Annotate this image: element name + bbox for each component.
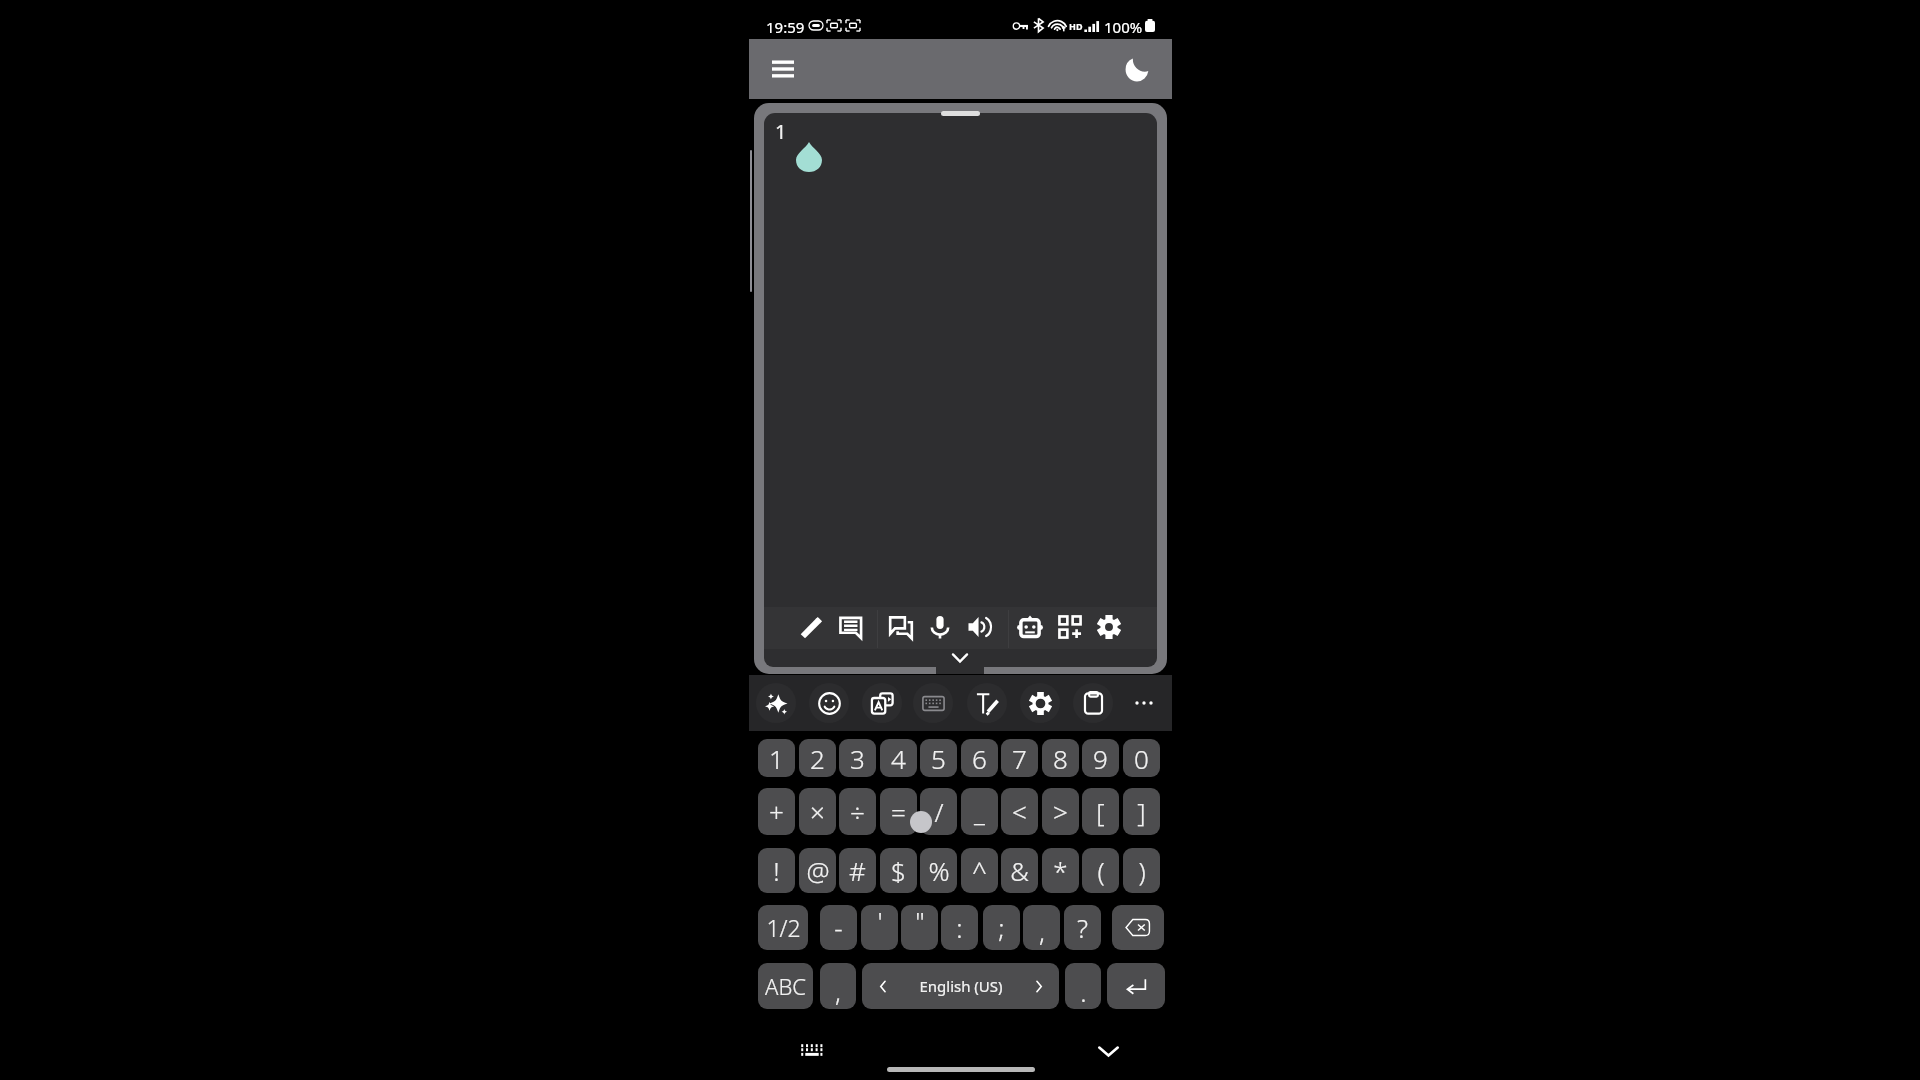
button[interactable]: Draw bbox=[796, 611, 828, 643]
button[interactable]: Translate bbox=[862, 683, 902, 723]
button[interactable]: Dark mode bbox=[1121, 51, 1157, 87]
button[interactable]: Backspace bbox=[1112, 905, 1164, 950]
staticText: _ bbox=[974, 794, 985, 829]
button[interactable]: Suggestions bbox=[756, 683, 796, 723]
button[interactable]: ) bbox=[1123, 848, 1160, 893]
button[interactable]: ^ bbox=[961, 848, 998, 893]
staticText: ! bbox=[773, 853, 780, 888]
button[interactable]: > bbox=[1042, 788, 1079, 835]
button[interactable]: _ bbox=[961, 788, 998, 835]
staticText: 1/2 bbox=[766, 912, 801, 943]
button[interactable]: Handwriting bbox=[967, 683, 1007, 723]
staticText: 5 bbox=[931, 741, 946, 776]
button[interactable]: Settings bbox=[1093, 611, 1125, 643]
staticText: 7 bbox=[1012, 741, 1027, 776]
button[interactable]: ' bbox=[861, 905, 898, 950]
button[interactable]: , bbox=[820, 963, 856, 1009]
button[interactable]: / bbox=[920, 788, 957, 835]
button[interactable]: ÷ bbox=[839, 788, 876, 835]
button[interactable]: 4 bbox=[880, 739, 917, 777]
button[interactable]: " bbox=[901, 905, 938, 950]
button[interactable]: 7 bbox=[1001, 739, 1038, 777]
button[interactable]: ? bbox=[1064, 905, 1101, 950]
button[interactable]: 9 bbox=[1082, 739, 1119, 777]
button[interactable]: ( bbox=[1082, 848, 1119, 893]
button[interactable]: 0 bbox=[1123, 739, 1160, 777]
staticText: % bbox=[928, 853, 950, 888]
button[interactable]: % bbox=[920, 848, 957, 893]
staticText: ; bbox=[998, 910, 1005, 945]
button[interactable]: ] bbox=[1123, 788, 1160, 835]
button[interactable]: Keyboard modes bbox=[913, 683, 953, 723]
button[interactable]: ABC bbox=[758, 963, 813, 1009]
button[interactable]: ; bbox=[983, 905, 1020, 950]
button[interactable]: = bbox=[880, 788, 917, 835]
button[interactable]: Clipboard bbox=[1073, 683, 1113, 723]
button[interactable]: ! bbox=[758, 848, 795, 893]
button[interactable]: # bbox=[839, 848, 876, 893]
button[interactable]: Menu bbox=[765, 51, 801, 87]
staticText: ) bbox=[1138, 853, 1146, 888]
button[interactable]: More options bbox=[1124, 683, 1164, 723]
button[interactable]: Notes bbox=[835, 611, 867, 643]
button[interactable]: 3 bbox=[839, 739, 876, 777]
button[interactable]: 8 bbox=[1042, 739, 1079, 777]
button[interactable]: Enter bbox=[1107, 963, 1165, 1009]
button[interactable]: Voice input bbox=[924, 611, 956, 643]
staticText: 1 bbox=[775, 118, 787, 145]
staticText: - bbox=[834, 910, 843, 945]
button[interactable]: 1/2 bbox=[758, 905, 808, 950]
button[interactable]: [ bbox=[1082, 788, 1119, 835]
button[interactable]: * bbox=[1042, 848, 1079, 893]
staticText: 100% bbox=[1104, 17, 1143, 37]
button[interactable]: : bbox=[941, 905, 978, 950]
staticText: 9 bbox=[1093, 741, 1108, 776]
staticText: ÷ bbox=[850, 794, 865, 829]
staticText: ? bbox=[1077, 910, 1088, 945]
staticText: , bbox=[1039, 914, 1045, 949]
button[interactable]: Read aloud bbox=[964, 611, 996, 643]
button[interactable]: < bbox=[1001, 788, 1038, 835]
button[interactable]: Comments bbox=[885, 611, 917, 643]
staticText: 2 bbox=[810, 741, 825, 776]
button[interactable]: - bbox=[820, 905, 857, 950]
button[interactable]: Widgets bbox=[1054, 611, 1086, 643]
button[interactable]: & bbox=[1001, 848, 1038, 893]
staticText: 19:59 bbox=[766, 17, 805, 37]
button[interactable]: English (US) bbox=[862, 963, 1059, 1009]
staticText: < bbox=[1012, 794, 1027, 829]
staticText: & bbox=[1010, 853, 1029, 888]
button[interactable]: Hide keyboard bbox=[1092, 1035, 1124, 1067]
staticText: ( bbox=[1097, 853, 1105, 888]
button[interactable]: . bbox=[1065, 963, 1101, 1009]
button[interactable]: 6 bbox=[961, 739, 998, 777]
button[interactable]: Keyboard settings bbox=[1020, 683, 1060, 723]
staticText: HD bbox=[1069, 20, 1083, 32]
button[interactable]: Assistant bbox=[1014, 611, 1046, 643]
staticText: [ bbox=[1096, 794, 1105, 829]
button[interactable]: 2 bbox=[799, 739, 836, 777]
button[interactable]: Emoji bbox=[809, 683, 849, 723]
staticText: × bbox=[810, 794, 825, 829]
staticText: $ bbox=[891, 853, 906, 888]
staticText: ] bbox=[1137, 794, 1146, 829]
staticText: 3 bbox=[850, 741, 865, 776]
staticText: @ bbox=[806, 853, 830, 888]
button[interactable]: Collapse toolbar bbox=[936, 646, 984, 674]
staticText: > bbox=[1053, 794, 1068, 829]
button[interactable]: × bbox=[799, 788, 836, 835]
button[interactable]: Show keyboard bbox=[796, 1034, 828, 1066]
staticText: " bbox=[915, 905, 925, 938]
button[interactable]: @ bbox=[799, 848, 836, 893]
staticText: . bbox=[1080, 974, 1087, 1009]
button[interactable]: 1 bbox=[758, 739, 795, 777]
button[interactable]: , bbox=[1023, 905, 1060, 950]
button[interactable]: $ bbox=[880, 848, 917, 893]
staticText: English (US) bbox=[919, 976, 1003, 996]
staticText: 8 bbox=[1053, 741, 1068, 776]
staticText: = bbox=[891, 794, 906, 829]
button[interactable]: 5 bbox=[920, 739, 957, 777]
button[interactable]: + bbox=[758, 788, 795, 835]
staticText: 1 bbox=[769, 741, 784, 776]
staticText: * bbox=[1053, 853, 1068, 888]
